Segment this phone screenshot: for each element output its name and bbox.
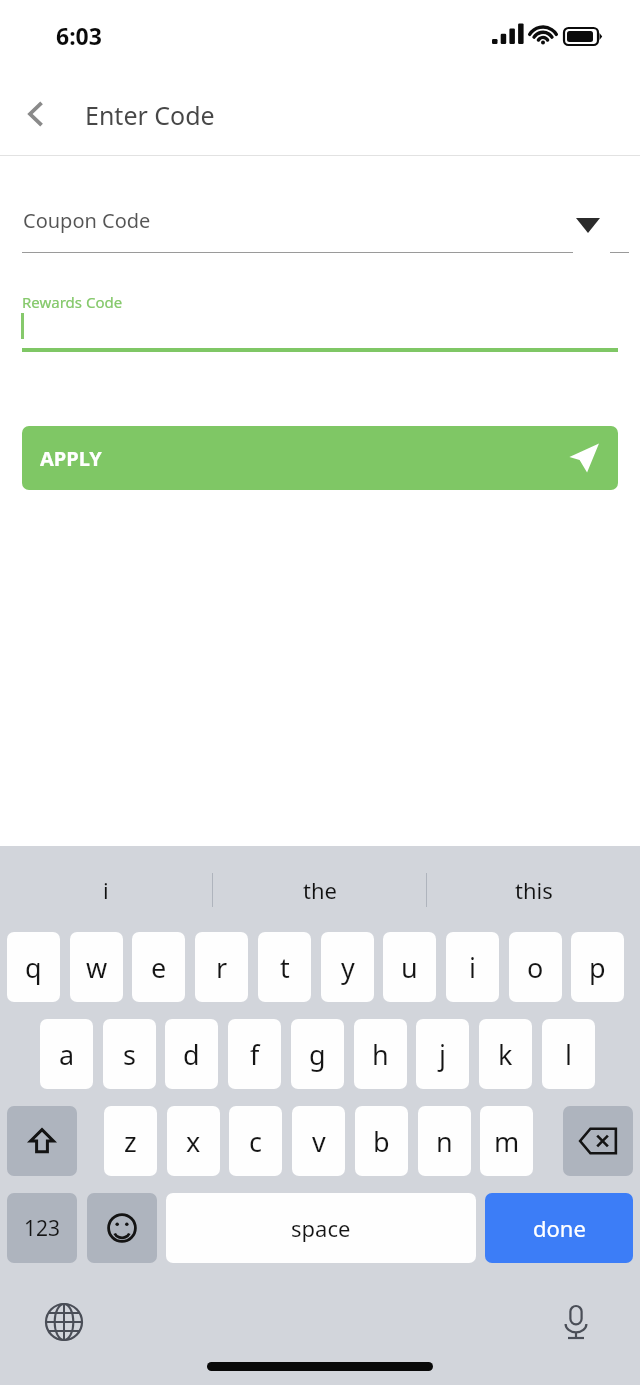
staticText: b [373, 1123, 390, 1160]
staticText: the [303, 875, 337, 905]
staticText: v [312, 1123, 326, 1160]
button[interactable]: v [292, 1106, 345, 1176]
button[interactable]: Backspace [563, 1106, 633, 1176]
staticText: 123 [24, 1214, 61, 1243]
button[interactable]: space [166, 1193, 476, 1263]
staticText: a [59, 1036, 75, 1073]
staticText: z [124, 1123, 137, 1160]
button[interactable]: done [485, 1193, 633, 1263]
button[interactable]: w [70, 932, 123, 1002]
staticText: this [515, 875, 553, 905]
button[interactable]: e [132, 932, 185, 1002]
button[interactable]: g [291, 1019, 344, 1089]
staticText: i [103, 875, 109, 905]
button[interactable]: 123 [7, 1193, 77, 1263]
staticText: r [216, 949, 228, 986]
button[interactable]: t [258, 932, 311, 1002]
staticText: o [527, 949, 544, 986]
button[interactable]: n [418, 1106, 471, 1176]
button[interactable]: Voice input [548, 1294, 604, 1350]
staticText: Enter Code [85, 98, 215, 132]
button[interactable]: the [213, 860, 426, 920]
button[interactable]: h [354, 1019, 407, 1089]
button[interactable]: q [7, 932, 60, 1002]
staticText: c [249, 1123, 262, 1160]
button[interactable]: r [195, 932, 248, 1002]
staticText: e [151, 949, 167, 986]
staticText: i [469, 949, 476, 986]
button[interactable]: y [321, 932, 374, 1002]
staticText: j [439, 1036, 446, 1073]
staticText: s [123, 1036, 136, 1073]
staticText: w [86, 949, 108, 986]
button[interactable]: APPLY [22, 426, 618, 490]
staticText: y [341, 949, 355, 986]
staticText: x [186, 1123, 201, 1160]
button[interactable]: a [40, 1019, 93, 1089]
button[interactable]: z [104, 1106, 157, 1176]
staticText: Coupon Code [23, 207, 151, 234]
button[interactable]: p [571, 932, 624, 1002]
button[interactable]: Shift [7, 1106, 77, 1176]
button[interactable]: Back [12, 90, 60, 138]
staticText: 6:03 [56, 20, 102, 51]
button[interactable]: Change language [36, 1294, 92, 1350]
button[interactable]: m [480, 1106, 533, 1176]
staticText: h [372, 1036, 389, 1073]
button[interactable]: d [165, 1019, 218, 1089]
staticText: p [589, 949, 606, 986]
button[interactable]: this [427, 860, 640, 920]
button[interactable]: l [542, 1019, 595, 1089]
staticText: g [309, 1036, 326, 1073]
button[interactable]: u [383, 932, 436, 1002]
staticText: space [291, 1213, 351, 1243]
staticText: k [498, 1036, 513, 1073]
button[interactable]: i [446, 932, 499, 1002]
staticText: m [494, 1123, 520, 1160]
staticText: u [401, 949, 418, 986]
button[interactable]: x [167, 1106, 220, 1176]
button[interactable]: i [0, 860, 212, 920]
button[interactable]: Coupon Code [0, 190, 640, 260]
button[interactable]: s [103, 1019, 156, 1089]
staticText: done [533, 1213, 586, 1243]
button[interactable]: k [479, 1019, 532, 1089]
staticText: t [280, 949, 290, 986]
button[interactable]: b [355, 1106, 408, 1176]
staticText: l [565, 1036, 572, 1073]
button[interactable]: Emoji [87, 1193, 157, 1263]
staticText: q [25, 949, 42, 986]
staticText: d [183, 1036, 200, 1073]
staticText: APPLY [40, 445, 102, 472]
button[interactable]: c [229, 1106, 282, 1176]
button[interactable]: f [228, 1019, 281, 1089]
staticText: f [250, 1036, 260, 1073]
button[interactable]: j [416, 1019, 469, 1089]
staticText: Rewards Code [22, 292, 123, 312]
staticText: n [436, 1123, 453, 1160]
button[interactable]: o [509, 932, 562, 1002]
